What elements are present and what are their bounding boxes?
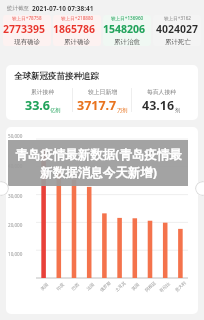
staticText: 统计截至 — [7, 5, 29, 12]
button[interactable]: 每百人接种 — [132, 88, 190, 114]
button[interactable]: 50,000 — [6, 127, 198, 314]
staticText: 青岛疫情最新数据(青岛疫情最 新数据消息今天新增) — [15, 146, 182, 181]
button[interactable]: 较上日新增 — [73, 88, 131, 114]
button[interactable]: Scroll — [0, 181, 9, 196]
button[interactable]: 累计接种 — [14, 88, 72, 114]
staticText: 英国 — [130, 282, 140, 291]
staticText: 30,000 — [8, 193, 23, 199]
staticText: 累计治愈 — [114, 38, 140, 46]
button[interactable]: 全球新冠疫苗接种追踪 — [6, 65, 198, 120]
staticText: 每百人接种 — [147, 88, 176, 95]
staticText: 43.16 — [142, 97, 175, 114]
staticText: 全球新冠疫苗接种追踪 — [14, 71, 99, 82]
staticText: 20,000 — [8, 222, 23, 228]
button[interactable]: 较上日+136960 — [103, 15, 151, 46]
staticText: 4024027 — [156, 22, 199, 36]
staticText: 现有确诊 — [14, 38, 40, 46]
button[interactable]: Scroll — [195, 181, 204, 196]
staticText: 巴西 — [70, 282, 80, 291]
button[interactable]: 较上日+3162 — [153, 15, 201, 46]
staticText: 土耳其 — [114, 280, 127, 293]
staticText: 154820621 — [103, 22, 151, 36]
staticText: 较上日+78758 — [12, 15, 42, 21]
staticText: 法国 — [85, 282, 95, 291]
staticText: 意大利 — [174, 280, 187, 293]
staticText: 累计死亡 — [165, 38, 191, 46]
staticText: 50,000 — [8, 133, 23, 139]
button[interactable]: 较上日+78758 — [3, 15, 51, 46]
staticText: 33.6 — [25, 97, 50, 114]
staticText: 万剂 — [117, 107, 128, 114]
button[interactable]: 较上日+218880 — [53, 15, 101, 46]
staticText: 阿根廷 — [144, 280, 157, 293]
staticText: 印度 — [55, 282, 65, 291]
staticText: 俄罗斯 — [99, 280, 112, 293]
staticText: 较上日+218880 — [61, 15, 94, 21]
staticText: 2021-07-10 07:38:41 — [32, 4, 94, 13]
staticText: 27733954 — [3, 22, 51, 36]
staticText: 186578602 — [53, 22, 101, 36]
staticText: 3717.7 — [77, 97, 117, 114]
staticText: 较上日+3162 — [164, 15, 191, 21]
staticText: 较上日新增 — [88, 88, 117, 95]
staticText: 累计确诊 — [64, 38, 90, 46]
staticText: 哥伦比亚 — [158, 280, 173, 293]
staticText: 累计接种 — [31, 88, 55, 95]
staticText: 10,000 — [8, 251, 23, 257]
staticText: 剂 — [175, 107, 181, 114]
staticText: 亿剂 — [50, 107, 61, 114]
staticText: 较上日+136960 — [111, 15, 144, 21]
staticText: 美国 — [39, 282, 49, 291]
